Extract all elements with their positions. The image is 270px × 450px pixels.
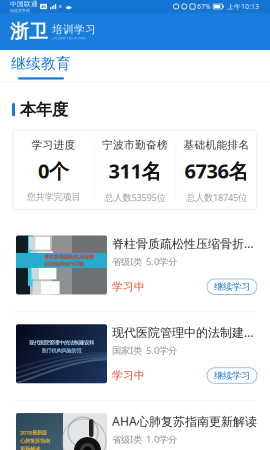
staticText: 校园宽带网 [10,8,30,13]
staticText: 本年度 [20,100,68,119]
button[interactable]: 继续教育 [9,50,73,81]
staticText: 宁波市勤奋榜 [102,138,168,152]
staticText: 折的临床诊疗经验 [44,261,84,267]
staticText: 4G [41,4,46,9]
staticText: 省级I类 1.0学分 [112,433,177,445]
staticText: 67% [197,2,211,11]
button[interactable]: 现代医院管理中的法制建设和 [0,312,270,400]
staticText: 国家I类 5.0学分 [112,344,177,357]
staticText: 浙卫 [10,20,48,43]
staticText: 您共学完项目 [26,191,80,203]
staticText: 继续教育 [11,55,71,73]
button[interactable]: 2018最新版 [0,401,270,450]
staticText: 继续学习 [214,281,250,292]
staticText: 省级I类 5.0学分 [112,255,177,268]
staticText: AHA心肺复苏指南更新解读 [112,413,257,429]
button[interactable]: 脊柱骨质疏松性压缩骨 [0,223,270,311]
staticText: 上午10:13 [227,2,259,11]
staticText: 继续学习 [214,370,250,381]
staticText: 现代医院管理中的法制建… [112,324,253,340]
staticText: 培训学习 [52,23,96,36]
staticText: 心肺复苏指南 [20,438,50,444]
staticText: 基础机能排名 [184,138,250,152]
staticText: 学习中 [112,369,145,382]
staticText: 总人数18745位 [186,191,247,203]
staticText: 学习进度 [31,138,75,152]
staticText: 现代医院管理中的法制建设和 [29,339,94,346]
staticText: × [58,2,62,11]
staticText: 脊柱骨质疏松性压缩骨折… [112,235,253,251]
staticText: 6736名 [185,158,249,184]
staticText: ZHEJIANG PEIXUN XUEXI [52,36,86,40]
staticText: 脊柱骨质疏松性压缩骨 [44,254,94,260]
staticText: 中国联通 [10,0,38,8]
staticText: 更新解读 [20,446,40,450]
staticText: 医疗机构风险防范 [41,347,81,354]
staticText: 2018最新版 [20,429,47,436]
staticText: 311名 [108,158,161,184]
staticText: 总人数53595位 [104,191,165,203]
staticText: 学习中 [112,280,145,293]
staticText: 0个 [38,158,69,184]
